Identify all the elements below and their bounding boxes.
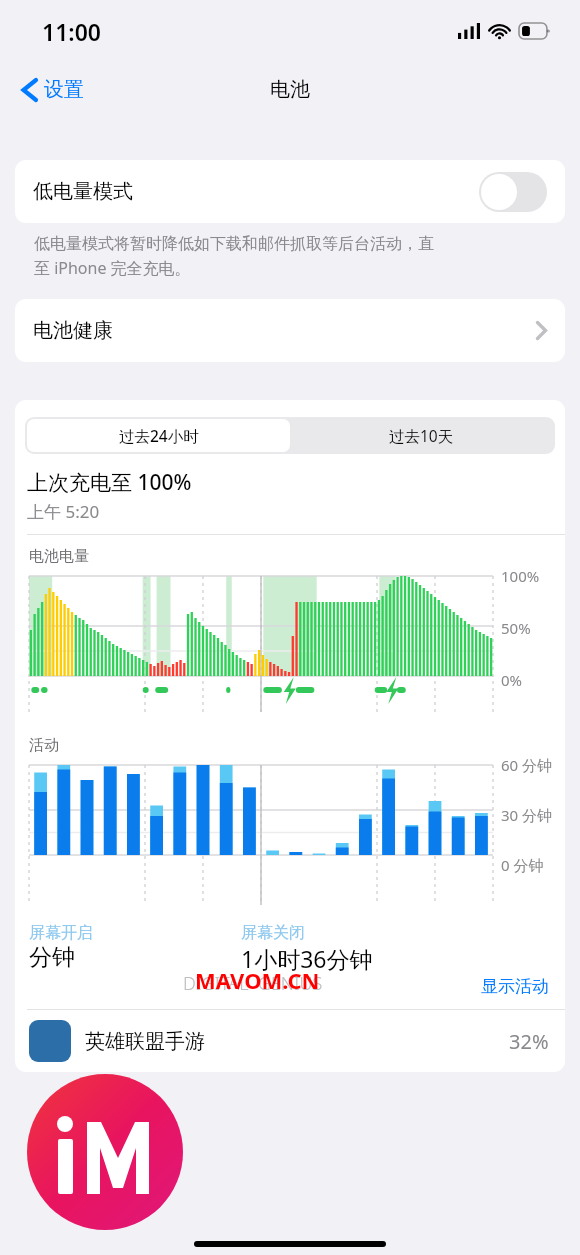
- staticText: 上午 5:20: [27, 500, 100, 523]
- staticText: 100%: [501, 566, 540, 586]
- staticText: 屏幕开启: [29, 923, 93, 943]
- staticText: 屏幕关闭: [241, 923, 305, 943]
- button[interactable]: 低电量模式: [15, 160, 565, 223]
- staticText: MAVOM.CN: [195, 965, 320, 995]
- staticText: 设置: [44, 77, 84, 102]
- staticText: 低电量模式: [33, 179, 133, 204]
- staticText: 上次充电至 100%: [27, 468, 192, 497]
- staticText: 分钟: [29, 943, 75, 972]
- button[interactable]: 电池健康: [15, 299, 565, 362]
- staticText: 32%: [509, 1028, 549, 1055]
- staticText: 电池电量: [29, 547, 89, 566]
- button[interactable]: 过去24小时: [27, 419, 290, 452]
- staticText: 低电量模式将暂时降低如下载和邮件抓取等后台活动，直 至 iPhone 完全充电。: [34, 234, 434, 279]
- staticText: 0 分钟: [501, 855, 544, 875]
- staticText: 50%: [501, 618, 531, 638]
- staticText: 1小时36分钟: [241, 943, 373, 974]
- button[interactable]: 过去10天: [290, 419, 553, 452]
- staticText: 60 分钟: [501, 755, 553, 775]
- button[interactable]: 显示活动: [481, 976, 549, 997]
- button[interactable]: 英雄联盟手游: [15, 1010, 565, 1072]
- staticText: 英雄联盟手游: [85, 1029, 205, 1054]
- button[interactable]: [479, 172, 547, 212]
- staticText: 过去24小时: [119, 425, 199, 446]
- staticText: 11:00: [42, 16, 101, 47]
- staticText: 电池: [270, 77, 310, 102]
- staticText: 电池健康: [33, 318, 113, 343]
- staticText: 活动: [29, 736, 59, 755]
- staticText: 30 分钟: [501, 805, 553, 825]
- staticText: 过去10天: [389, 425, 454, 446]
- staticText: 0%: [501, 670, 523, 690]
- staticText: DIGITAL GENIUS: [183, 971, 323, 996]
- button[interactable]: 设置: [16, 71, 90, 108]
